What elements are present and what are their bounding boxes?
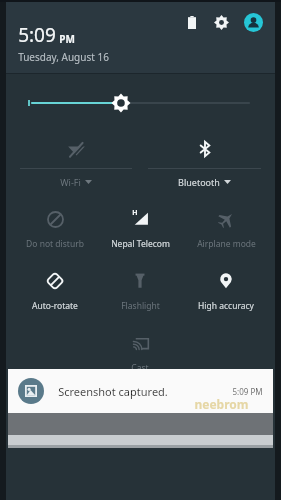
staticText: 5:09 PM — [232, 386, 263, 397]
button[interactable]: Flashlight — [97, 266, 183, 314]
button[interactable]: Battery — [181, 11, 203, 33]
staticText: Nepal Telecom — [111, 238, 170, 250]
button[interactable]: Bluetooth — [148, 134, 261, 190]
staticText: Airplane mode — [197, 238, 256, 250]
button[interactable]: Auto-rotate — [12, 266, 97, 314]
staticText: Cast — [131, 362, 149, 374]
button[interactable]: Wi-Fi — [20, 134, 132, 190]
staticText: Auto-rotate — [32, 300, 78, 312]
button[interactable]: Brightness — [6, 90, 275, 116]
button[interactable]: Cast — [97, 328, 183, 376]
button[interactable]: Do not disturb — [12, 204, 97, 252]
button[interactable]: User — [241, 10, 265, 34]
button[interactable]: H — [97, 204, 183, 252]
staticText: Tuesday, August 16 — [18, 50, 109, 64]
button[interactable]: Screenshot captured. — [8, 369, 273, 413]
staticText: Flashlight — [121, 300, 160, 312]
staticText: High accuracy — [198, 300, 254, 312]
staticText: H — [132, 208, 138, 218]
button[interactable]: High accuracy — [183, 266, 269, 314]
staticText: PM — [59, 32, 75, 46]
button[interactable]: Airplane mode — [183, 204, 269, 252]
staticText: Screenshot captured. — [58, 384, 168, 399]
staticText: Bluetooth — [178, 176, 220, 188]
staticText: neebrom — [194, 396, 249, 412]
button[interactable]: Settings — [209, 10, 233, 34]
staticText: Do not disturb — [26, 238, 84, 250]
staticText: Wi-Fi — [60, 176, 81, 188]
staticText: 5:09 — [18, 22, 56, 48]
